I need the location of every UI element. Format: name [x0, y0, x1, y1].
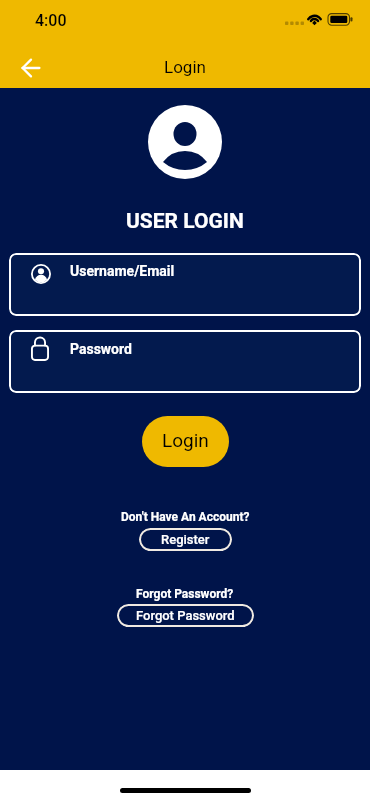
- staticText: Password: [70, 341, 132, 357]
- staticText: Don't Have An Account?: [121, 510, 250, 524]
- button[interactable]: Forgot Password: [117, 604, 254, 627]
- staticText: Login: [164, 57, 206, 77]
- button[interactable]: Password: [9, 330, 361, 393]
- button[interactable]: Username/Email: [9, 253, 361, 316]
- button[interactable]: Register: [139, 528, 232, 551]
- staticText: Login: [162, 429, 209, 451]
- button[interactable]: Login: [142, 416, 229, 467]
- staticText: Username/Email: [70, 263, 175, 279]
- staticText: 4:00: [35, 11, 67, 30]
- staticText: Forgot Password?: [136, 587, 234, 601]
- button[interactable]: Back: [11, 48, 51, 88]
- staticText: Forgot Password: [136, 608, 235, 623]
- staticText: Register: [161, 532, 210, 547]
- staticText: USER LOGIN: [126, 209, 244, 234]
